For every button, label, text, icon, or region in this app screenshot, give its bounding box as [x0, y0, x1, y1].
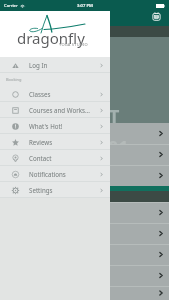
button[interactable]: Reviews	[0, 134, 110, 150]
button[interactable]: What's Hot!	[0, 118, 110, 134]
staticText: Log In	[29, 61, 48, 69]
staticText: 3:07 PM	[77, 3, 93, 9]
staticText: Contact	[29, 154, 52, 162]
button[interactable]: Notifications	[0, 166, 110, 182]
staticText: Booking	[6, 77, 22, 82]
staticText: T	[109, 104, 120, 129]
button[interactable]: Settings	[0, 182, 110, 198]
staticText: 01	[108, 135, 129, 156]
staticText: Reviews	[29, 138, 53, 146]
button[interactable]: Courses and Works...	[0, 102, 110, 118]
button[interactable]: 01	[0, 123, 169, 144]
button[interactable]	[0, 202, 169, 223]
button[interactable]	[0, 223, 169, 244]
staticText: Courses and Works...	[29, 106, 90, 114]
button[interactable]	[0, 286, 169, 300]
button[interactable]	[0, 244, 169, 265]
staticText: Notifications	[29, 170, 66, 178]
staticText: Carrier	[4, 3, 18, 9]
staticText: dragonfly	[17, 28, 85, 48]
staticText: YOGA STUDIO	[59, 42, 88, 47]
staticText: What's Hot!	[29, 122, 63, 130]
button[interactable]: Calendar	[152, 12, 161, 21]
button[interactable]: Classes	[0, 86, 110, 102]
button[interactable]: Log In	[0, 57, 110, 73]
button[interactable]	[0, 144, 169, 165]
button[interactable]	[0, 165, 169, 186]
staticText: Settings	[29, 186, 53, 194]
staticText: Classes	[29, 90, 51, 98]
button[interactable]: Contact	[0, 150, 110, 166]
button[interactable]	[0, 265, 169, 286]
